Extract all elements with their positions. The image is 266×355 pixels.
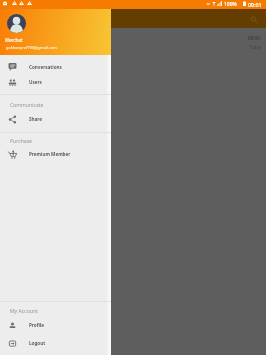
staticText: Profile [29,322,44,328]
staticText: gokhanprof708@gmail.com [6,45,57,50]
staticText: Purchase [10,138,32,145]
button[interactable]: Conversations [0,60,111,77]
staticText: My Account [10,308,38,315]
button[interactable]: Share [0,112,111,129]
staticText: 100% [224,1,237,8]
staticText: Merchat [5,37,23,43]
button[interactable]: Merchat [0,9,111,55]
button[interactable]: Profile [0,318,111,335]
staticText: 09:01 [248,1,262,8]
staticText: 09:00 [248,35,260,41]
button[interactable]: Premium Member [0,147,111,164]
staticText: Share [29,116,42,122]
staticText: Today [249,44,262,50]
button[interactable]: Users [0,75,111,92]
staticText: Logout [29,340,46,346]
staticText: Premium Member [29,151,71,157]
staticText: Communicate [10,102,44,109]
staticText: Conversations [29,64,62,70]
staticText: Users [29,79,42,85]
button[interactable]: Logout [0,336,111,353]
button[interactable]: Search [246,12,260,26]
